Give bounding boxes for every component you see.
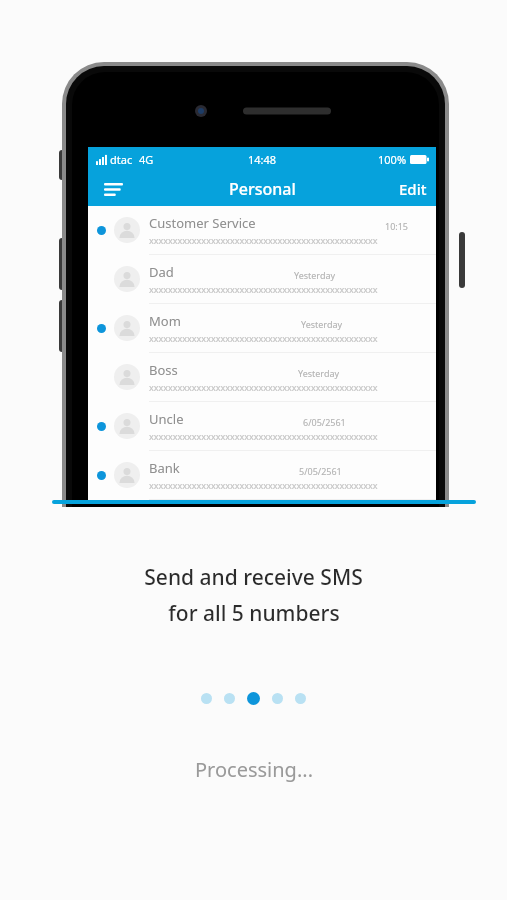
staticText: 5/05/2561	[299, 465, 342, 477]
button[interactable]: Page 5	[295, 693, 306, 704]
staticText: for all 5 numbers	[168, 599, 340, 628]
staticText: Boss	[149, 361, 178, 379]
staticText: Uncle	[149, 410, 184, 428]
button[interactable]: Page 1	[201, 693, 212, 704]
staticText: 6/05/2561	[303, 416, 346, 428]
staticText: Personal	[229, 178, 296, 200]
staticText: xxxxxxxxxxxxxxxxxxxxxxxxxxxxxxxxxxxxxxxx…	[149, 283, 378, 295]
button[interactable]: Dad	[88, 255, 436, 304]
staticText: Mom	[149, 312, 181, 330]
staticText: Dad	[149, 263, 174, 281]
button[interactable]: Page 4	[272, 693, 283, 704]
staticText: 100%	[378, 152, 407, 167]
staticText: Yesterday	[301, 318, 343, 330]
staticText: Bank	[149, 459, 180, 477]
staticText: Edit	[399, 179, 427, 199]
staticText: Processing...	[195, 756, 313, 783]
staticText: xxxxxxxxxxxxxxxxxxxxxxxxxxxxxxxxxxxxxxxx…	[149, 430, 378, 442]
button[interactable]: Page 2	[224, 693, 235, 704]
staticText: Send and receive SMS	[144, 563, 363, 592]
staticText: Yesterday	[298, 367, 340, 379]
staticText: xxxxxxxxxxxxxxxxxxxxxxxxxxxxxxxxxxxxxxxx…	[149, 479, 378, 491]
staticText: 4G	[139, 152, 154, 167]
button[interactable]: Uncle	[88, 402, 436, 451]
staticText: xxxxxxxxxxxxxxxxxxxxxxxxxxxxxxxxxxxxxxxx…	[149, 381, 378, 393]
button[interactable]: Customer Service	[88, 206, 436, 255]
button[interactable]: Bank	[88, 451, 436, 500]
staticText: Yesterday	[294, 269, 336, 281]
staticText: xxxxxxxxxxxxxxxxxxxxxxxxxxxxxxxxxxxxxxxx…	[149, 332, 378, 344]
staticText: dtac	[110, 152, 133, 167]
staticText: 10:15	[385, 220, 409, 232]
staticText: xxxxxxxxxxxxxxxxxxxxxxxxxxxxxxxxxxxxxxxx…	[149, 234, 378, 246]
staticText: 14:48	[248, 152, 277, 167]
button[interactable]: Page 3	[247, 692, 260, 705]
button[interactable]: Menu	[98, 174, 128, 204]
button[interactable]: Mom	[88, 304, 436, 353]
staticText: Customer Service	[149, 214, 256, 232]
button[interactable]: Edit	[399, 179, 427, 199]
button[interactable]: Boss	[88, 353, 436, 402]
